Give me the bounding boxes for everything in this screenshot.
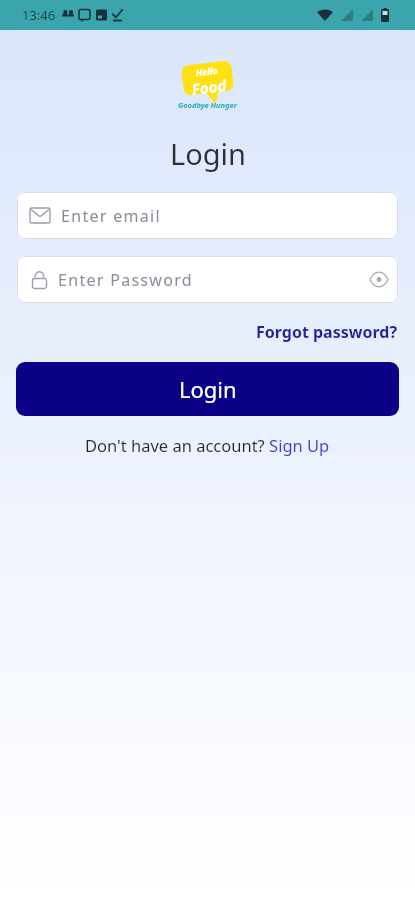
staticText: Forgot password? — [256, 321, 398, 343]
staticText: Enter email — [61, 205, 161, 227]
staticText: Login — [170, 134, 246, 173]
staticText: Login — [179, 374, 237, 404]
staticText: Goodbye Hunger — [178, 100, 237, 110]
button[interactable]: Forgot password? — [256, 303, 398, 343]
staticText: Enter Password — [58, 269, 193, 291]
button[interactable]: Enter email — [17, 192, 398, 239]
staticText: Hello — [195, 64, 218, 78]
button[interactable]: Enter Password — [17, 256, 398, 303]
staticText: Don't have an account? Sign Up — [85, 434, 330, 456]
button[interactable]: Login — [16, 362, 399, 416]
button[interactable]: Don't have an account? Sign Up — [85, 434, 330, 456]
staticText: 13:46 — [22, 6, 56, 24]
staticText: Food — [191, 75, 228, 99]
